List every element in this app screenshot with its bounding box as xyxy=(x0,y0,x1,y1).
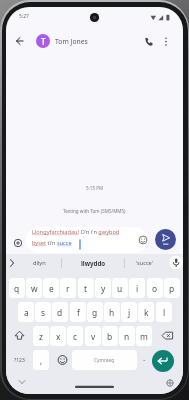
button[interactable]: l xyxy=(156,302,172,322)
button[interactable]: q xyxy=(9,278,25,298)
button[interactable]: i xyxy=(129,278,145,298)
button[interactable]: o xyxy=(147,278,163,298)
button[interactable]: T xyxy=(36,34,50,48)
button[interactable]: h xyxy=(104,302,120,322)
button[interactable]: , xyxy=(33,350,49,370)
staticText: i xyxy=(136,283,139,294)
button[interactable] xyxy=(159,34,173,49)
button[interactable]: 'succe' xyxy=(125,255,163,271)
button[interactable]: x xyxy=(50,326,66,346)
staticText: v xyxy=(91,331,96,342)
staticText: 5:15 PM xyxy=(86,185,104,191)
button[interactable]: d xyxy=(52,302,68,322)
button[interactable] xyxy=(155,229,176,250)
button[interactable] xyxy=(7,255,17,271)
button[interactable]: c xyxy=(67,326,83,346)
staticText: o xyxy=(152,283,158,294)
staticText: c xyxy=(73,331,78,342)
button[interactable]: k xyxy=(138,302,154,322)
button[interactable]: s xyxy=(35,302,51,322)
button[interactable]: y xyxy=(95,278,111,298)
staticText: k xyxy=(144,307,149,318)
staticText: x xyxy=(56,331,61,342)
button[interactable] xyxy=(12,237,24,249)
button[interactable]: w xyxy=(26,278,42,298)
staticText: q xyxy=(14,283,20,294)
staticText: dilyn xyxy=(33,259,46,267)
staticText: ?123 xyxy=(14,357,25,364)
button[interactable]: g xyxy=(87,302,103,322)
staticText: u xyxy=(117,283,123,294)
button[interactable]: . xyxy=(137,347,152,367)
staticText: Texting with Tom (SMS/MMS) xyxy=(63,208,126,214)
staticText: p xyxy=(169,283,175,294)
staticText: llwyddo xyxy=(81,259,106,267)
button[interactable]: a xyxy=(18,302,34,322)
button[interactable] xyxy=(164,377,176,389)
staticText: h xyxy=(109,307,115,318)
button[interactable] xyxy=(137,234,149,246)
button[interactable]: n xyxy=(119,326,135,346)
button[interactable]: b xyxy=(102,326,118,346)
button[interactable] xyxy=(12,33,28,49)
staticText: l xyxy=(163,307,166,318)
button[interactable] xyxy=(156,326,180,346)
staticText: 5:27 xyxy=(19,13,29,20)
staticText: n xyxy=(124,331,130,342)
button[interactable]: j xyxy=(121,302,137,322)
button[interactable]: p xyxy=(164,278,180,298)
staticText: f xyxy=(77,307,80,318)
button[interactable] xyxy=(152,350,174,372)
staticText: j xyxy=(128,307,131,318)
button[interactable]: t xyxy=(78,278,94,298)
staticText: e xyxy=(49,283,54,294)
staticText: m xyxy=(140,331,148,342)
button[interactable]: dilyn xyxy=(20,255,58,271)
button[interactable] xyxy=(16,377,28,387)
staticText: byset ti'n succe xyxy=(32,239,72,247)
button[interactable]: f xyxy=(70,302,86,322)
staticText: s xyxy=(41,307,46,318)
staticText: . xyxy=(143,352,146,363)
button[interactable] xyxy=(9,326,31,346)
staticText: , xyxy=(40,355,43,366)
staticText: Cymraeg xyxy=(94,357,115,364)
button[interactable]: ?123 xyxy=(9,350,29,370)
button[interactable]: m xyxy=(136,326,152,346)
staticText: T xyxy=(41,36,46,47)
staticText: g xyxy=(92,307,98,318)
staticText: d xyxy=(57,307,63,318)
staticText: a xyxy=(24,307,29,318)
staticText: r xyxy=(66,283,70,294)
button[interactable]: u xyxy=(112,278,128,298)
button[interactable]: Cymraeg xyxy=(72,350,137,370)
button[interactable]: Llongyfarchiadau! O'n i'n gwybod xyxy=(26,227,147,253)
staticText: z xyxy=(39,331,43,342)
button[interactable]: z xyxy=(33,326,49,346)
staticText: Llongyfarchiadau! O'n i'n gwybod xyxy=(32,228,120,236)
button[interactable]: e xyxy=(43,278,59,298)
staticText: t xyxy=(84,283,88,294)
button[interactable] xyxy=(141,34,156,49)
button[interactable] xyxy=(169,255,183,271)
button[interactable]: r xyxy=(60,278,76,298)
button[interactable] xyxy=(55,350,70,370)
staticText: y xyxy=(101,283,106,294)
staticText: 'succe' xyxy=(136,259,153,267)
staticText: b xyxy=(107,331,113,342)
staticText: w xyxy=(31,283,38,294)
button[interactable]: llwyddo xyxy=(66,255,120,271)
button[interactable]: v xyxy=(85,326,101,346)
staticText: Tom Jones xyxy=(55,37,88,46)
